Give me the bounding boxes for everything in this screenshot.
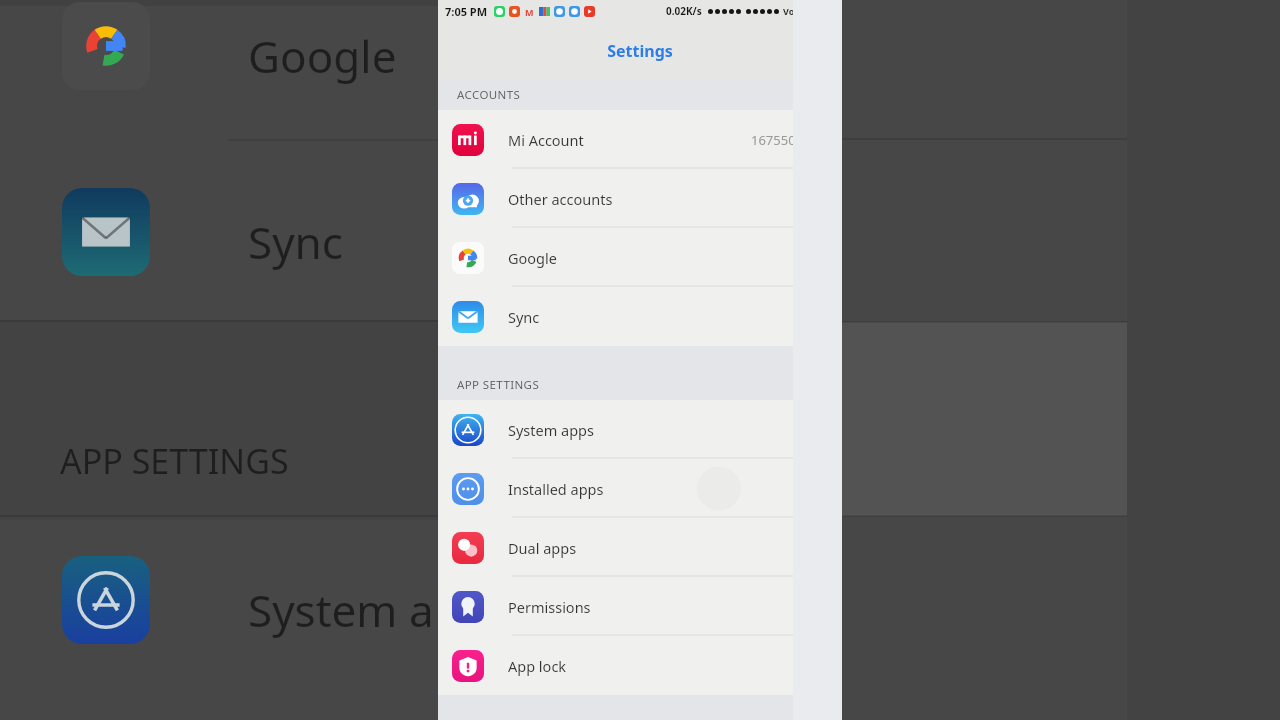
staticText: Google	[508, 248, 557, 268]
staticText: App lock	[508, 656, 567, 676]
button[interactable]: Installed apps	[438, 459, 842, 518]
staticText: Other accounts	[508, 189, 613, 209]
staticText: APP SETTINGS	[60, 438, 289, 484]
button[interactable]: Other accounts	[438, 169, 842, 228]
staticText: System apps	[508, 420, 594, 440]
staticText: Google	[248, 26, 397, 86]
staticText: System a	[248, 580, 434, 640]
button[interactable]: Permissions	[438, 577, 842, 636]
staticText: Dual apps	[508, 538, 577, 558]
staticText: Installed apps	[508, 479, 604, 499]
button[interactable]: System apps	[438, 400, 842, 459]
staticText: Settings	[607, 40, 673, 62]
button[interactable]: Mi Account	[438, 110, 842, 169]
staticText: ACCOUNTS	[457, 87, 521, 103]
button[interactable]: Dual apps	[438, 518, 842, 577]
staticText: APP SETTINGS	[457, 377, 540, 393]
staticText: 1675506065	[751, 131, 826, 149]
staticText: VoLTE	[783, 5, 810, 17]
staticText: Sync	[248, 212, 343, 272]
staticText: Sync	[508, 307, 540, 327]
staticText: 7:05 PM	[445, 4, 488, 19]
staticText: Permissions	[508, 597, 591, 617]
button[interactable]: App lock	[438, 636, 842, 695]
button[interactable]: Sync	[438, 287, 842, 346]
staticText: M	[525, 6, 534, 17]
button[interactable]: Google	[438, 228, 842, 287]
staticText: Mi Account	[508, 130, 584, 150]
staticText: 0.02K/s	[666, 4, 702, 18]
